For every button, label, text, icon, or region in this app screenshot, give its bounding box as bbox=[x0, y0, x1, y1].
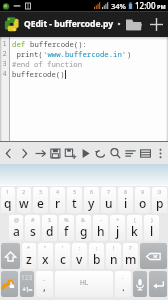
staticText: z bbox=[26, 251, 32, 267]
button[interactable]: 1 bbox=[1, 187, 15, 213]
staticText: t bbox=[72, 195, 77, 211]
button[interactable]: Emoji bbox=[1, 271, 18, 297]
button[interactable]: Space bbox=[55, 271, 113, 297]
button[interactable]: _ bbox=[36, 271, 53, 297]
button[interactable]: 4 bbox=[50, 187, 65, 213]
button[interactable]: " bbox=[38, 243, 53, 269]
staticText: x bbox=[42, 251, 49, 267]
button[interactable]: New file bbox=[145, 11, 168, 37]
button[interactable]: Run bbox=[78, 142, 93, 164]
staticText: 2 bbox=[2, 49, 7, 59]
button[interactable]: # bbox=[25, 215, 40, 241]
staticText: print( bbox=[12, 49, 43, 59]
button[interactable]: Symbols bbox=[20, 271, 34, 297]
button[interactable]: · bbox=[115, 271, 131, 297]
staticText: 2 bbox=[22, 188, 26, 195]
staticText: i bbox=[124, 195, 128, 211]
button[interactable]: * bbox=[22, 243, 36, 269]
button[interactable]: $ bbox=[42, 215, 57, 241]
button[interactable]: : bbox=[72, 243, 87, 269]
staticText: ) bbox=[151, 216, 153, 223]
staticText: u bbox=[105, 195, 113, 211]
button[interactable]: 2 bbox=[17, 187, 31, 213]
staticText: _ bbox=[43, 274, 46, 281]
button[interactable]: Forward bbox=[16, 142, 32, 164]
button[interactable]: View bbox=[138, 142, 153, 164]
staticText: +!= bbox=[22, 284, 33, 294]
staticText: $ bbox=[48, 216, 52, 223]
staticText: n bbox=[110, 251, 118, 267]
staticText: s bbox=[30, 223, 36, 239]
staticText: h bbox=[97, 223, 105, 239]
staticText: 4 bbox=[56, 188, 60, 195]
button[interactable]: 6 bbox=[84, 187, 99, 213]
staticText: PM bbox=[157, 3, 166, 10]
button[interactable]: % bbox=[59, 215, 74, 241]
button[interactable]: More options bbox=[153, 142, 168, 164]
button[interactable]: 7 bbox=[101, 187, 116, 213]
button[interactable]: & bbox=[76, 215, 91, 241]
button[interactable]: 9 bbox=[135, 187, 150, 213]
staticText: j bbox=[116, 223, 120, 239]
staticText: ' bbox=[62, 244, 64, 251]
button[interactable]: ? bbox=[123, 243, 138, 269]
staticText: 12:00 bbox=[135, 0, 156, 11]
button[interactable]: ( bbox=[127, 215, 142, 241]
button[interactable]: 0 bbox=[152, 187, 167, 213]
staticText: @ bbox=[14, 216, 19, 223]
staticText: , bbox=[43, 280, 46, 294]
button[interactable]: Save As bbox=[63, 142, 78, 164]
button[interactable]: ; bbox=[89, 243, 104, 269]
staticText: 1 bbox=[2, 39, 7, 49]
staticText: def bbox=[12, 39, 30, 49]
button[interactable]: Undo bbox=[93, 142, 108, 164]
staticText: ) bbox=[127, 49, 132, 59]
button[interactable]: 8 bbox=[118, 187, 133, 213]
staticText: 'www.buffercode.in' bbox=[43, 49, 127, 59]
staticText: " bbox=[44, 244, 47, 251]
button[interactable]: ' bbox=[55, 243, 70, 269]
button[interactable]: Open file bbox=[122, 11, 145, 37]
button[interactable]: ! bbox=[106, 243, 121, 269]
button[interactable]: 5 bbox=[67, 187, 82, 213]
button[interactable]: Voice input bbox=[133, 271, 147, 297]
staticText: + bbox=[116, 216, 120, 223]
button[interactable]: ) bbox=[144, 215, 159, 241]
staticText: HL bbox=[80, 278, 89, 287]
button[interactable]: + bbox=[110, 215, 125, 241]
staticText: 34% bbox=[111, 1, 126, 11]
button[interactable]: @ bbox=[9, 215, 23, 241]
staticText: g bbox=[80, 223, 88, 239]
staticText: 0 bbox=[158, 188, 162, 195]
staticText: 8 bbox=[124, 188, 128, 195]
staticText: ( bbox=[134, 216, 136, 223]
staticText: m bbox=[125, 251, 137, 267]
staticText: k bbox=[131, 223, 138, 239]
staticText: r bbox=[55, 195, 61, 211]
staticText: 3 bbox=[2, 59, 7, 69]
staticText: ? bbox=[129, 244, 132, 251]
staticText: q bbox=[4, 195, 12, 211]
staticText: & bbox=[81, 216, 86, 223]
button[interactable]: Save bbox=[48, 142, 63, 164]
staticText: . bbox=[122, 280, 125, 294]
button[interactable]: Search bbox=[108, 142, 123, 164]
button[interactable]: - bbox=[93, 215, 108, 241]
button[interactable]: Enter bbox=[149, 271, 167, 297]
button[interactable]: Indent bbox=[32, 142, 48, 164]
staticText: QEdit - buffercode.py bbox=[24, 18, 113, 30]
button[interactable]: Shift bbox=[1, 243, 20, 269]
button[interactable]: Back bbox=[0, 142, 16, 164]
staticText: 3 bbox=[39, 188, 43, 195]
staticText: 1 bbox=[6, 188, 10, 195]
staticText: : bbox=[79, 244, 81, 251]
button[interactable]: Delete bbox=[140, 243, 167, 269]
button[interactable]: 3 bbox=[33, 187, 48, 213]
staticText: ! bbox=[113, 244, 115, 251]
staticText: 5 bbox=[73, 188, 77, 195]
staticText: d bbox=[46, 223, 54, 239]
staticText: 123 bbox=[21, 273, 33, 282]
staticText: # bbox=[31, 216, 35, 223]
button[interactable]: Format bbox=[123, 142, 138, 164]
staticText: p bbox=[156, 195, 164, 211]
